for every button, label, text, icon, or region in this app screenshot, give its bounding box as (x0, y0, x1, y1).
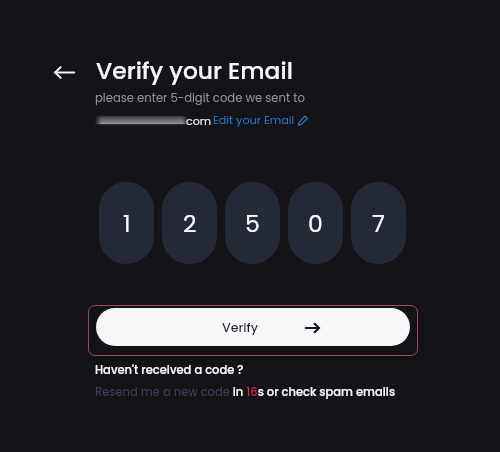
button[interactable]: 7 (351, 182, 406, 264)
staticText: 2 (183, 207, 197, 240)
button[interactable]: 0 (288, 182, 343, 264)
staticText: 5 (245, 207, 260, 240)
button[interactable]: Edit your Email (213, 112, 308, 128)
staticText: Haven't received a code ? (95, 362, 244, 378)
staticText: please enter 5-digit code we sent to (95, 90, 305, 106)
staticText: Edit your Email (213, 112, 295, 128)
button[interactable]: Back (47, 55, 81, 89)
staticText: Verify your Email (96, 54, 293, 87)
staticText: 1 (123, 207, 131, 240)
staticText: com (186, 113, 212, 128)
staticText: Verify (222, 319, 258, 336)
staticText: 7 (372, 207, 385, 240)
button[interactable]: Verify (96, 308, 410, 346)
staticText: 0 (308, 207, 323, 240)
button[interactable]: 2 (162, 182, 217, 264)
button[interactable]: 5 (225, 182, 280, 264)
button[interactable]: 1 (99, 182, 154, 264)
button[interactable]: Resend me a new code in 16s or check spa… (95, 384, 396, 400)
staticText: Resend me a new code in 16s or check spa… (95, 384, 396, 400)
